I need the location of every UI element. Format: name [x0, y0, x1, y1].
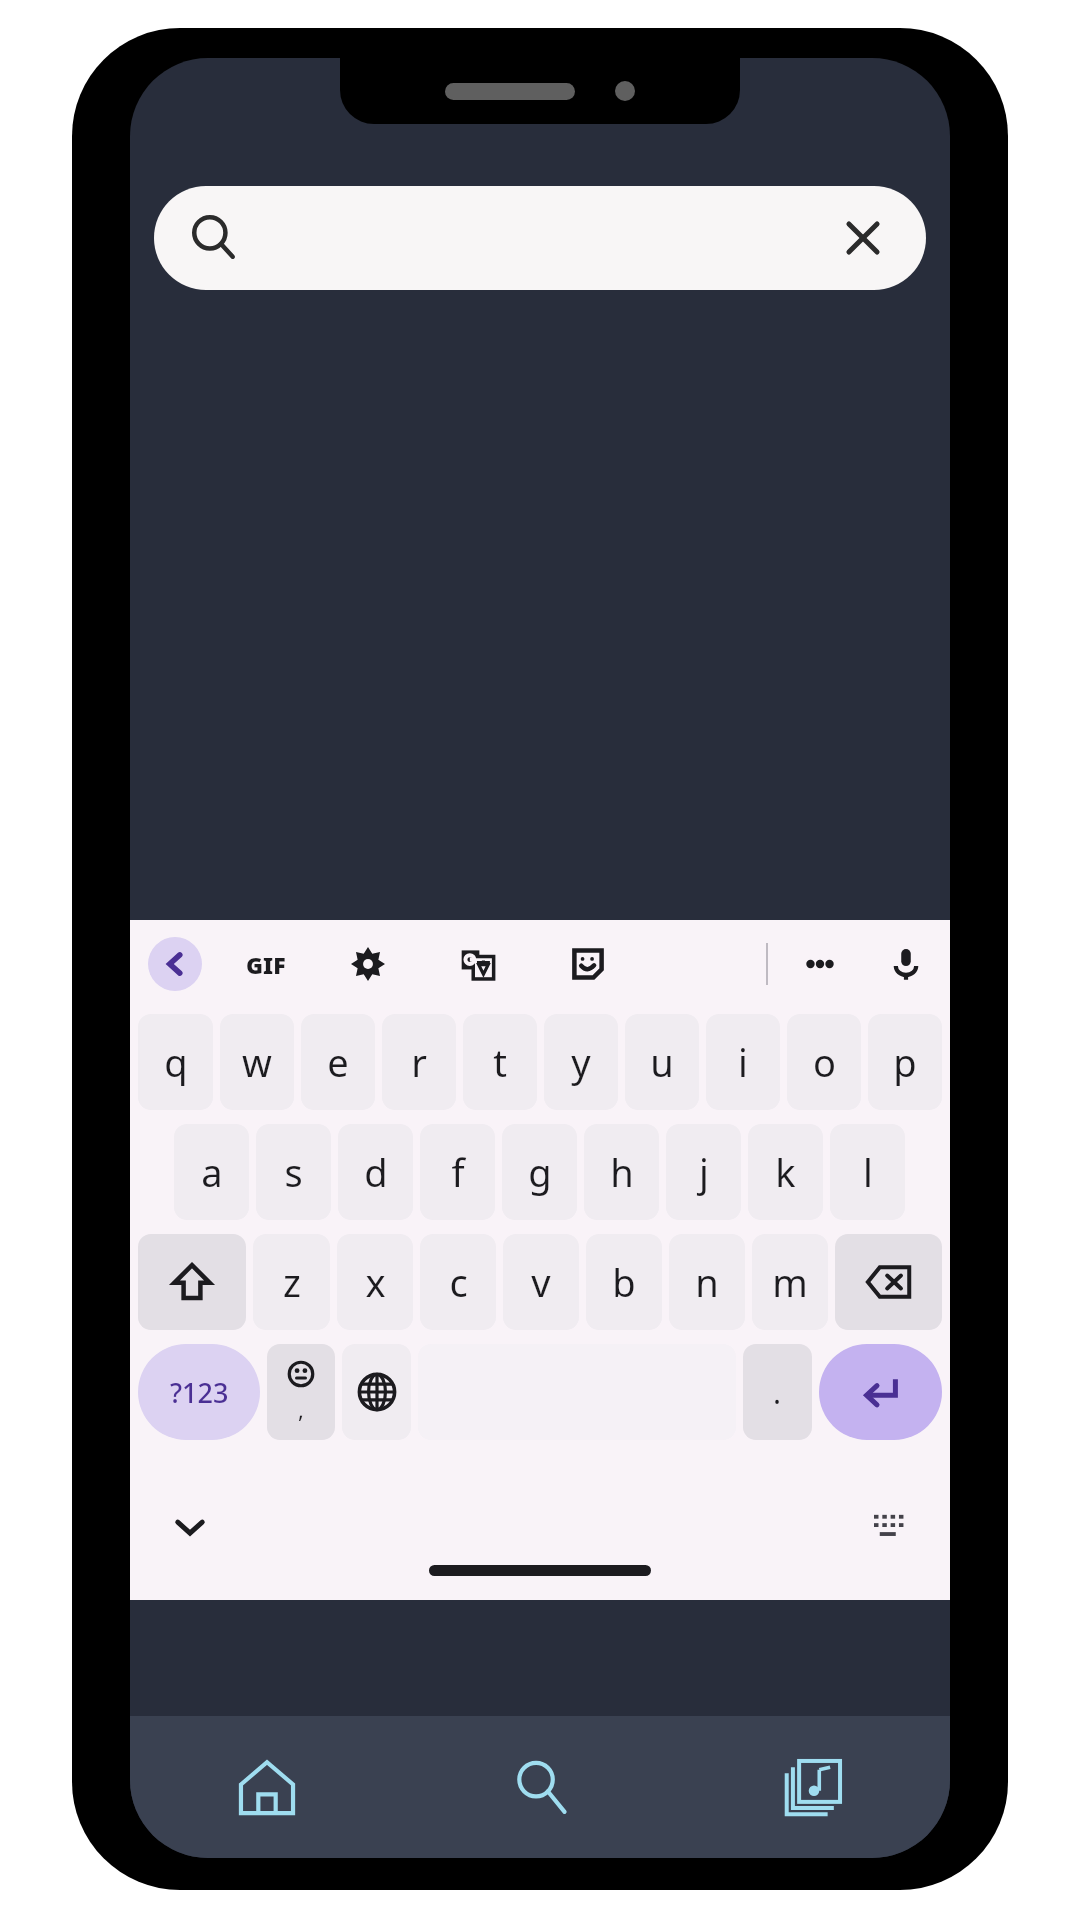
- staticText: y: [571, 1036, 591, 1088]
- button[interactable]: l: [830, 1124, 905, 1220]
- button[interactable]: j: [666, 1124, 741, 1220]
- button[interactable]: Shift: [138, 1234, 246, 1330]
- staticText: q: [164, 1036, 188, 1088]
- staticText: a: [201, 1146, 223, 1198]
- staticText: GIF: [246, 949, 286, 980]
- staticText: .: [773, 1372, 782, 1413]
- staticText: s: [284, 1146, 303, 1198]
- button[interactable]: Enter: [819, 1344, 942, 1440]
- staticText: c: [449, 1256, 468, 1308]
- button[interactable]: Hide keyboard: [160, 1497, 220, 1557]
- button[interactable]: e: [301, 1014, 375, 1110]
- button[interactable]: v: [503, 1234, 579, 1330]
- button[interactable]: s: [256, 1124, 331, 1220]
- button[interactable]: Library: [677, 1716, 950, 1858]
- button[interactable]: i: [706, 1014, 780, 1110]
- staticText: t: [493, 1036, 507, 1088]
- button[interactable]: a: [174, 1124, 249, 1220]
- staticText: f: [451, 1146, 465, 1198]
- button[interactable]: h: [584, 1124, 659, 1220]
- button[interactable]: c: [420, 1234, 496, 1330]
- button[interactable]: x: [337, 1234, 413, 1330]
- button[interactable]: Keyboard layout: [860, 1497, 920, 1557]
- button[interactable]: b: [586, 1234, 662, 1330]
- button[interactable]: q: [138, 1014, 213, 1110]
- staticText: x: [365, 1256, 386, 1308]
- button[interactable]: ?123: [138, 1344, 260, 1440]
- staticText: z: [283, 1256, 301, 1308]
- button[interactable]: p: [868, 1014, 942, 1110]
- staticText: ?123: [170, 1374, 229, 1411]
- staticText: k: [775, 1146, 796, 1198]
- button[interactable]: t: [463, 1014, 537, 1110]
- staticText: d: [364, 1146, 388, 1198]
- button[interactable]: o: [787, 1014, 861, 1110]
- button[interactable]: z: [253, 1234, 330, 1330]
- staticText: i: [738, 1036, 748, 1088]
- staticText: ,: [298, 1394, 304, 1424]
- button[interactable]: More options: [794, 938, 846, 990]
- button[interactable]: Stickers: [562, 938, 614, 990]
- button[interactable]: r: [382, 1014, 456, 1110]
- button[interactable]: g: [502, 1124, 577, 1220]
- button[interactable]: f: [420, 1124, 495, 1220]
- button[interactable]: Backspace: [835, 1234, 942, 1330]
- button[interactable]: Search: [154, 186, 926, 290]
- staticText: u: [650, 1036, 674, 1088]
- staticText: l: [863, 1146, 873, 1198]
- staticText: e: [327, 1036, 349, 1088]
- button[interactable]: n: [669, 1234, 745, 1330]
- button[interactable]: k: [748, 1124, 823, 1220]
- button[interactable]: Translate: [452, 938, 504, 990]
- staticText: o: [813, 1036, 836, 1088]
- button[interactable]: Settings: [342, 938, 394, 990]
- button[interactable]: .: [743, 1344, 812, 1440]
- button[interactable]: Search: [404, 1716, 677, 1858]
- staticText: r: [411, 1036, 427, 1088]
- button[interactable]: Back: [148, 937, 202, 991]
- button[interactable]: Change language: [342, 1344, 411, 1440]
- staticText: m: [772, 1256, 808, 1308]
- staticText: j: [699, 1146, 709, 1198]
- staticText: h: [610, 1146, 634, 1198]
- staticText: v: [531, 1256, 551, 1308]
- button[interactable]: Home: [130, 1716, 404, 1858]
- button[interactable]: w: [220, 1014, 294, 1110]
- button[interactable]: Voice input: [880, 938, 932, 990]
- button[interactable]: Emoji and comma: [267, 1344, 335, 1440]
- button[interactable]: y: [544, 1014, 618, 1110]
- button[interactable]: Clear: [834, 209, 892, 267]
- button[interactable]: d: [338, 1124, 413, 1220]
- staticText: w: [242, 1036, 272, 1088]
- other: Search: [188, 212, 240, 264]
- button[interactable]: m: [752, 1234, 828, 1330]
- staticText: g: [528, 1146, 552, 1198]
- staticText: p: [893, 1036, 917, 1088]
- button[interactable]: GIF: [238, 941, 294, 988]
- staticText: b: [612, 1256, 636, 1308]
- button[interactable]: u: [625, 1014, 699, 1110]
- staticText: n: [695, 1256, 719, 1308]
